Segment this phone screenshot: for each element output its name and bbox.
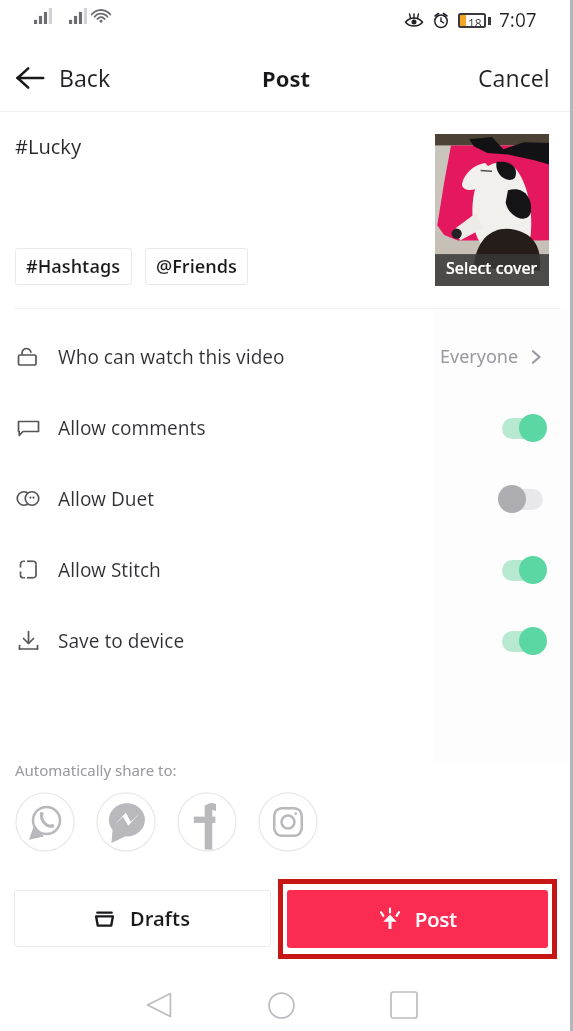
button[interactable]: Allow comments: [0, 392, 573, 463]
staticText: Back: [59, 62, 111, 93]
staticText: Allow Duet: [58, 486, 155, 512]
button[interactable]: WhatsApp: [15, 792, 75, 852]
button[interactable]: Save to device, on: [498, 627, 547, 655]
staticText: Save to device: [58, 628, 185, 654]
staticText: #Hashtags: [26, 254, 121, 279]
staticText: Drafts: [130, 905, 191, 932]
button[interactable]: Allow Stitch, on: [498, 556, 547, 584]
button[interactable]: Recents: [376, 977, 432, 1031]
button[interactable]: Allow Stitch: [0, 534, 573, 605]
staticText: Who can watch this video: [58, 344, 285, 370]
button[interactable]: @Friends: [145, 248, 248, 285]
staticText: Post: [262, 63, 311, 93]
button[interactable]: Messenger: [96, 792, 156, 852]
staticText: Select cover: [446, 257, 538, 279]
button[interactable]: Who can watch this video: [0, 321, 573, 392]
button[interactable]: Facebook: [177, 792, 237, 852]
staticText: Automatically share to:: [15, 760, 177, 780]
button[interactable]: #Hashtags: [15, 248, 132, 285]
staticText: Post: [415, 906, 457, 933]
staticText: 18: [468, 15, 482, 26]
button[interactable]: Back: [131, 977, 187, 1031]
button[interactable]: Instagram: [258, 792, 318, 852]
staticText: @Friends: [156, 254, 237, 279]
staticText: #Lucky: [15, 133, 82, 160]
button[interactable]: Back: [0, 52, 125, 103]
button[interactable]: Save to device: [0, 605, 573, 676]
staticText: Allow comments: [58, 415, 206, 441]
button[interactable]: Drafts: [14, 890, 271, 947]
staticText: 7:07: [499, 7, 537, 33]
button[interactable]: Allow comments, on: [498, 414, 547, 442]
button[interactable]: Allow Duet: [0, 463, 573, 534]
staticText: Allow Stitch: [58, 557, 161, 583]
button[interactable]: Cancel: [460, 52, 573, 103]
staticText: Everyone: [440, 344, 519, 369]
button[interactable]: Allow Duet, off: [498, 485, 547, 513]
button[interactable]: Post: [278, 879, 557, 959]
button[interactable]: Select cover: [435, 134, 549, 286]
button[interactable]: Home: [253, 977, 309, 1031]
